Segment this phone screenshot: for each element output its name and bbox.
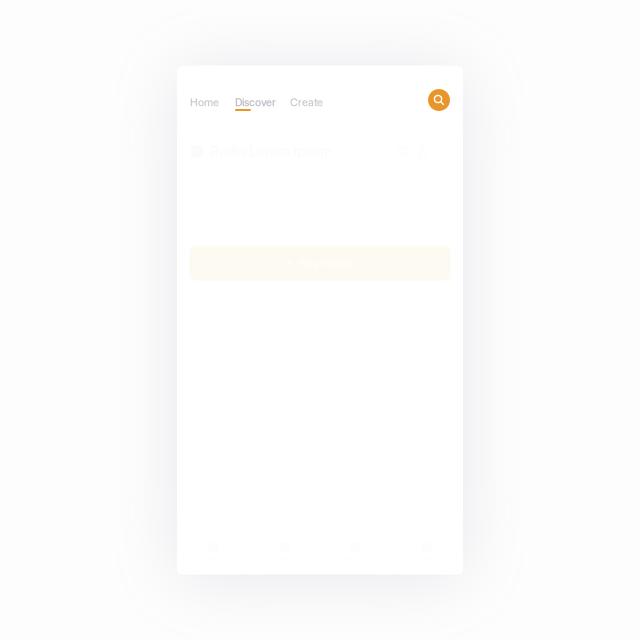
button[interactable]: Home [190,96,219,109]
staticText: Create [290,96,323,109]
button[interactable]: Create [290,96,323,109]
staticText: Discover [235,96,276,109]
button[interactable]: Search [428,89,450,111]
button[interactable]: Discover [235,96,276,109]
staticText: Home [190,96,219,109]
